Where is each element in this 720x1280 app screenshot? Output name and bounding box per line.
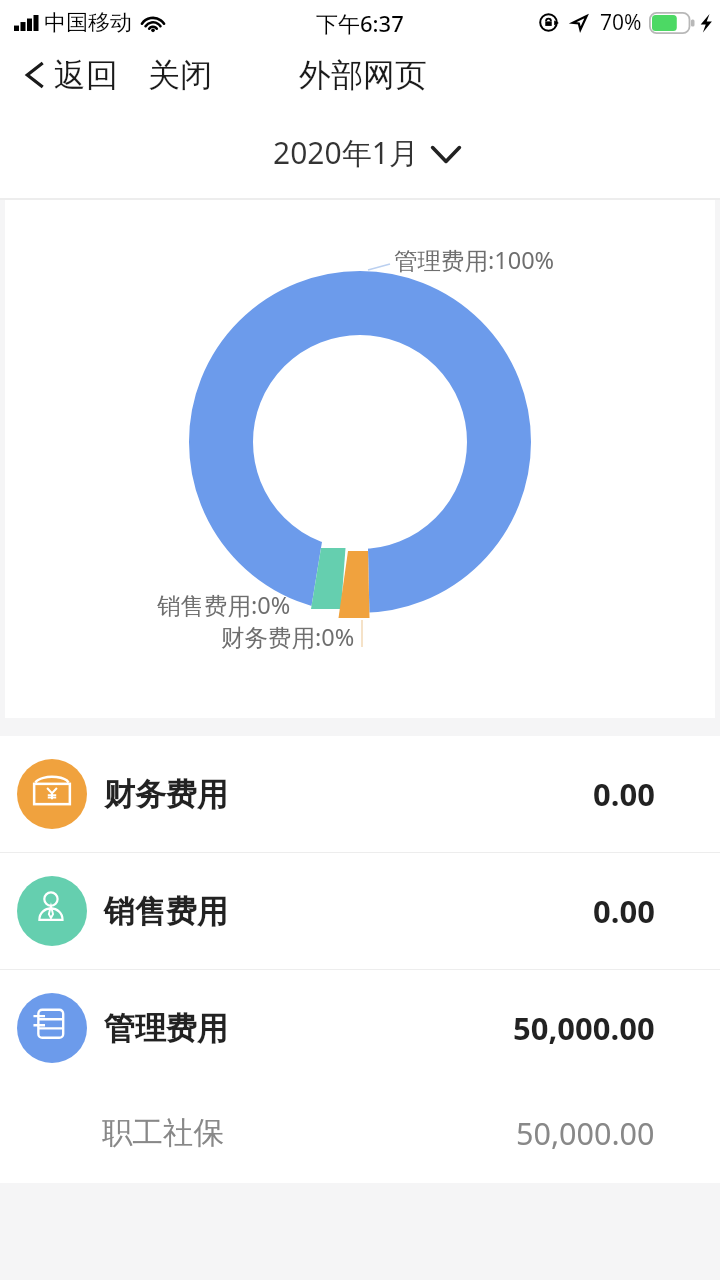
- staticText: 0.00: [593, 773, 655, 815]
- button[interactable]: 2020年1月: [0, 110, 720, 198]
- staticText: 0.00: [593, 890, 655, 932]
- staticText: 财务费用:0%: [221, 621, 355, 653]
- staticText: 销售费用:0%: [157, 589, 291, 621]
- button[interactable]: 财务费用: [0, 736, 720, 852]
- staticText: 中国移动: [44, 9, 132, 37]
- staticText: 50,000.00: [513, 1007, 655, 1049]
- staticText: 财务费用: [104, 775, 228, 814]
- staticText: 外部网页: [299, 55, 427, 95]
- staticText: 管理费用:100%: [394, 244, 555, 276]
- staticText: 管理费用: [104, 1009, 228, 1048]
- button[interactable]: 职工社保: [0, 1086, 720, 1183]
- staticText: 销售费用: [104, 892, 228, 931]
- staticText: 50,000.00: [516, 1112, 655, 1154]
- staticText: 2020年1月: [273, 132, 419, 173]
- staticText: 返回: [54, 55, 118, 95]
- button[interactable]: 返回: [24, 55, 118, 95]
- button[interactable]: 管理费用: [0, 970, 720, 1086]
- staticText: 下午6:37: [316, 8, 404, 38]
- staticText: 职工社保: [102, 1114, 224, 1152]
- button[interactable]: 关闭: [148, 55, 212, 95]
- button[interactable]: 销售费用: [0, 853, 720, 969]
- staticText: 70%: [600, 8, 642, 37]
